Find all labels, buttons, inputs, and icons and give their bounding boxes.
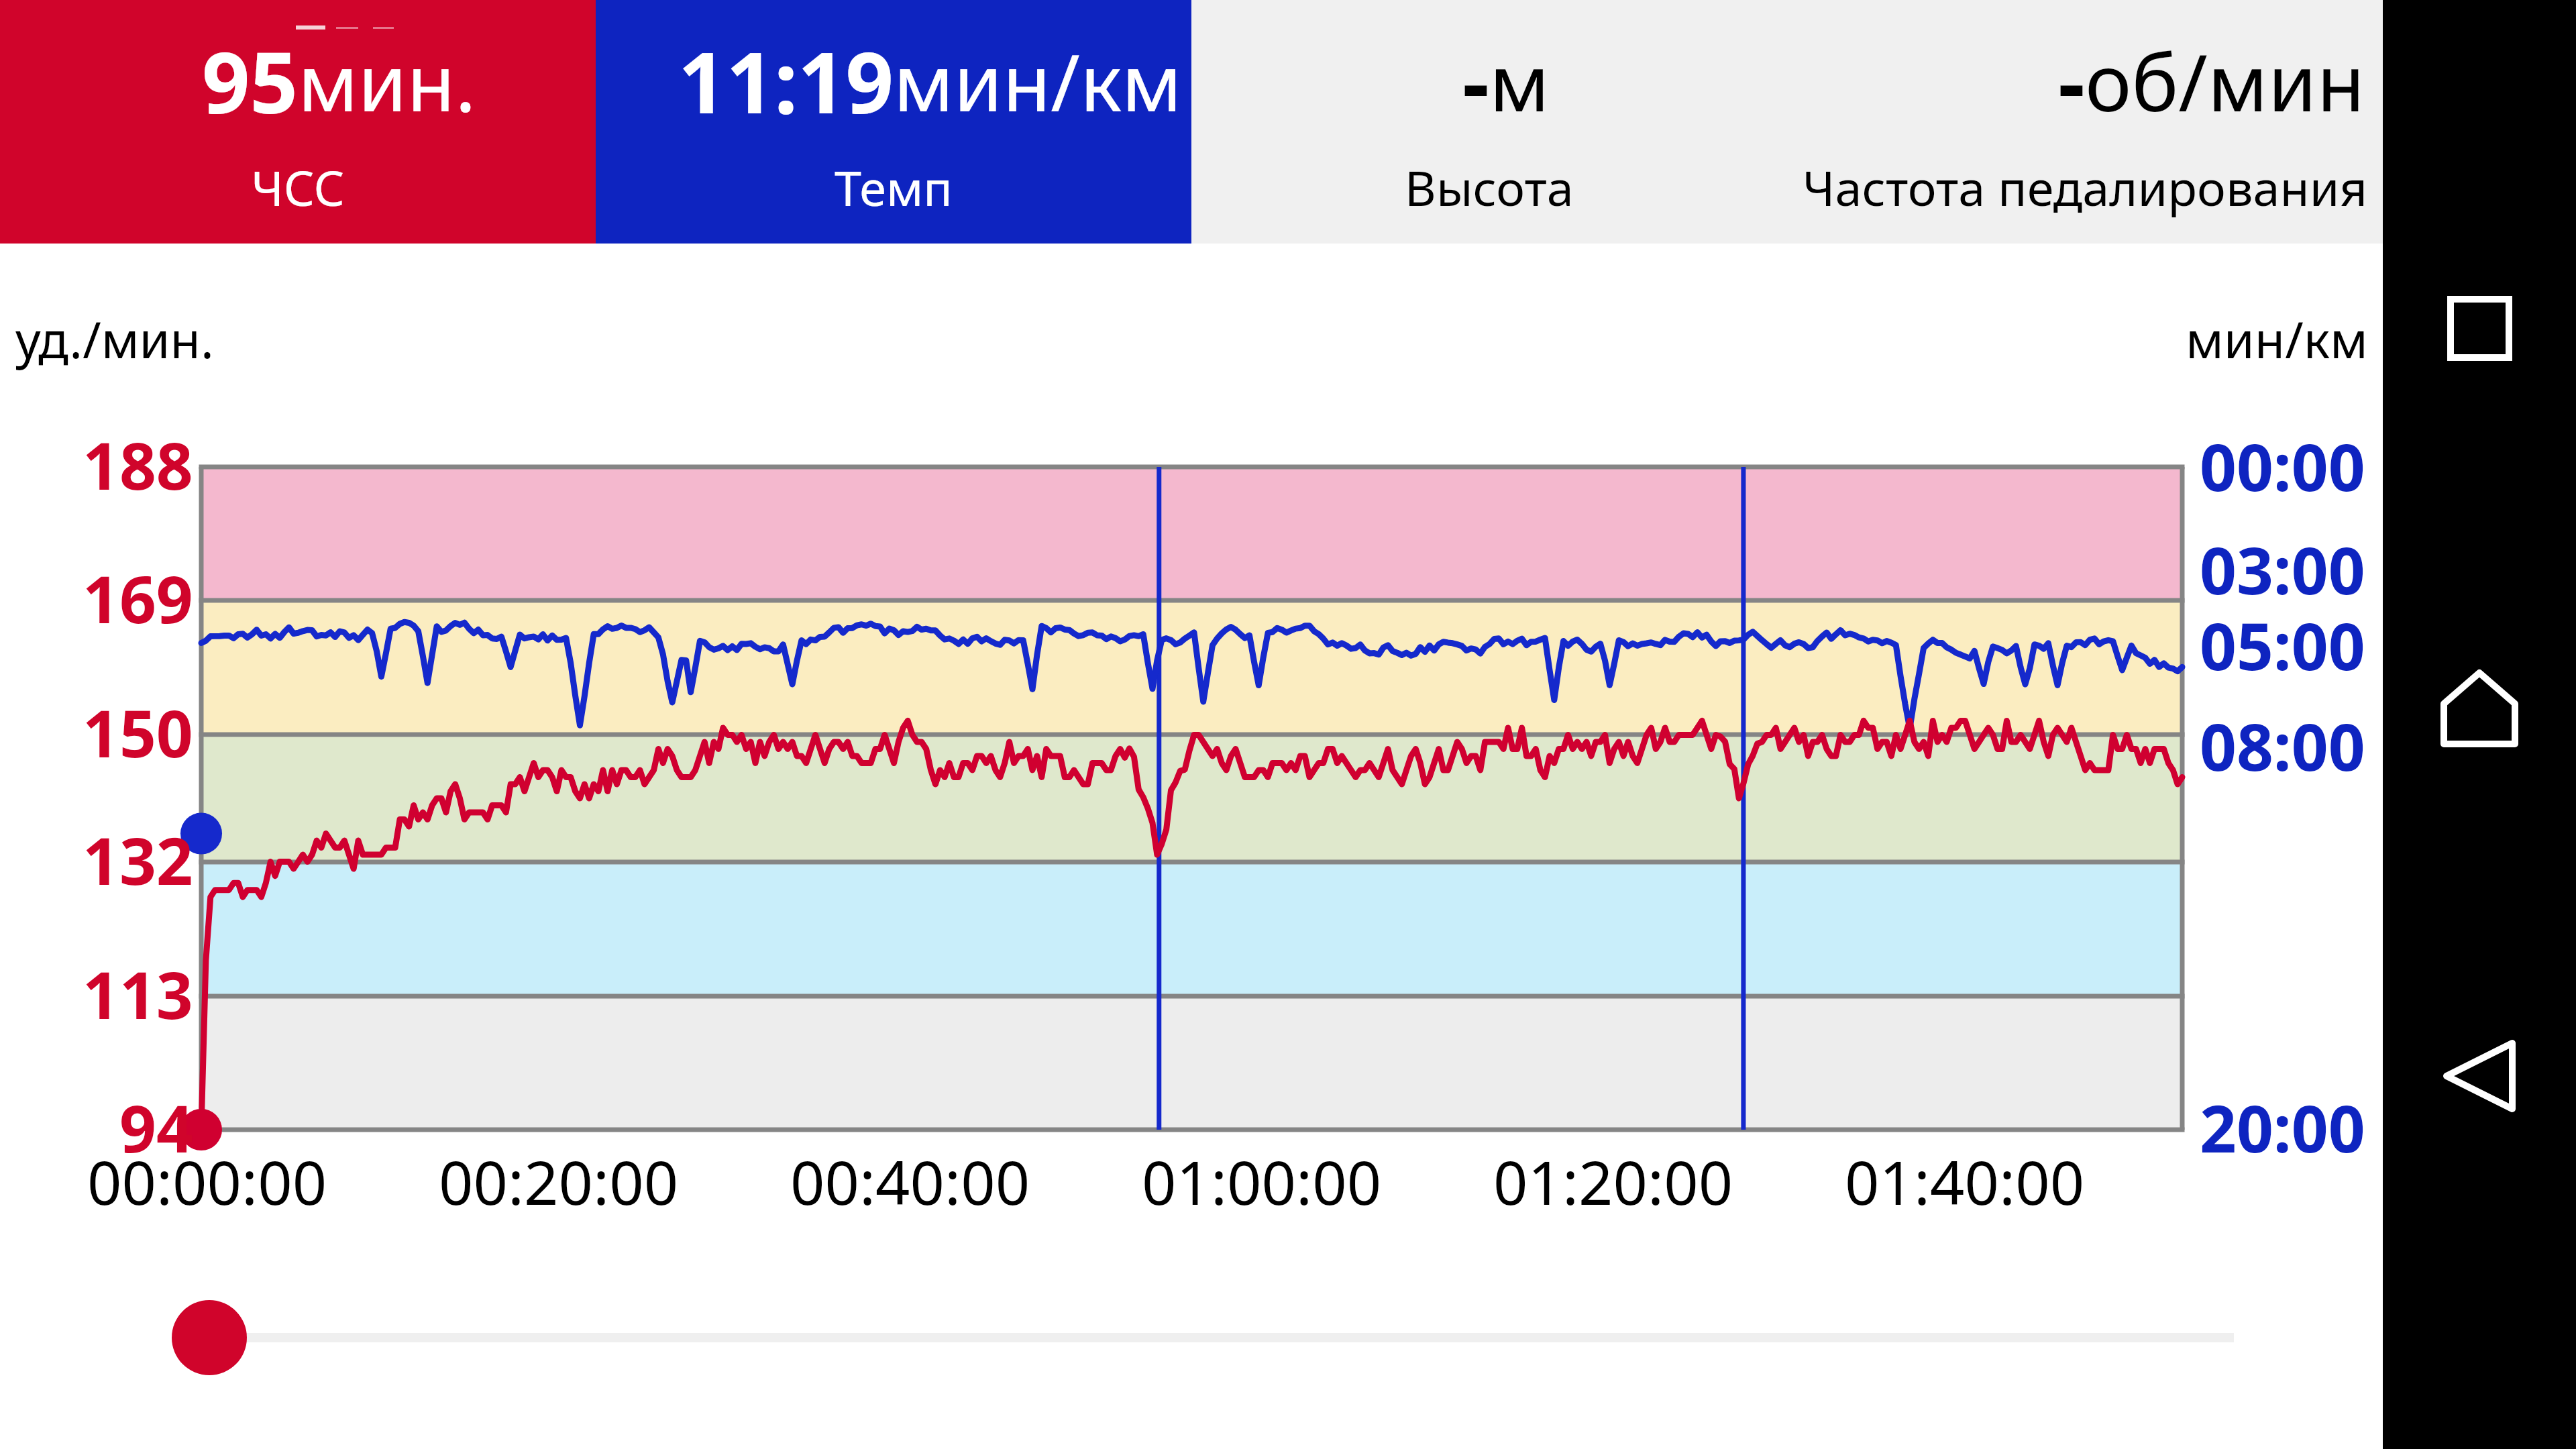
button[interactable]: Position	[158, 1287, 2285, 1389]
button[interactable]: -	[1787, 0, 2383, 244]
staticText: Частота педалирования	[1787, 154, 2383, 220]
staticText: 08:00	[2200, 702, 2365, 790]
staticText: 20:00	[2200, 1083, 2365, 1171]
staticText: 01:20:00	[1493, 1140, 1733, 1223]
staticText: м	[1489, 28, 1787, 134]
button[interactable]: 11:19	[596, 0, 1191, 244]
button[interactable]: Home	[2419, 648, 2540, 769]
staticText: 00:20:00	[439, 1140, 679, 1223]
staticText: мин/км	[894, 28, 1191, 134]
staticText: 00:40:00	[790, 1140, 1030, 1223]
staticText: 94	[119, 1083, 193, 1171]
staticText: ЧСС	[0, 154, 596, 220]
staticText: мин.	[298, 28, 596, 134]
staticText: 00:00	[2200, 422, 2365, 510]
staticText: 132	[83, 816, 193, 904]
staticText: 150	[83, 688, 193, 776]
staticText: 188	[83, 421, 193, 508]
staticText: Темп	[596, 154, 1191, 220]
staticText: 01:00:00	[1142, 1140, 1382, 1223]
button[interactable]: Back	[2419, 1016, 2540, 1136]
staticText: об/мин	[2085, 28, 2383, 134]
staticText: Высота	[1191, 154, 1787, 220]
staticText: -	[1191, 23, 1489, 138]
button[interactable]: -	[1191, 0, 1787, 244]
staticText: 11:19	[596, 23, 894, 138]
staticText: 00:00:00	[87, 1140, 327, 1223]
staticText: мин/км	[2186, 305, 2368, 373]
staticText: 113	[83, 950, 193, 1038]
staticText: уд./мин.	[15, 305, 214, 373]
button[interactable]: 95	[0, 0, 596, 244]
staticText: 169	[83, 554, 193, 642]
staticText: 03:00	[2200, 525, 2365, 613]
staticText: 01:40:00	[1845, 1140, 2085, 1223]
button[interactable]: Recent apps	[2419, 268, 2540, 388]
staticText: 95	[0, 23, 298, 138]
staticText: 05:00	[2200, 601, 2365, 689]
staticText: -	[1787, 23, 2085, 138]
